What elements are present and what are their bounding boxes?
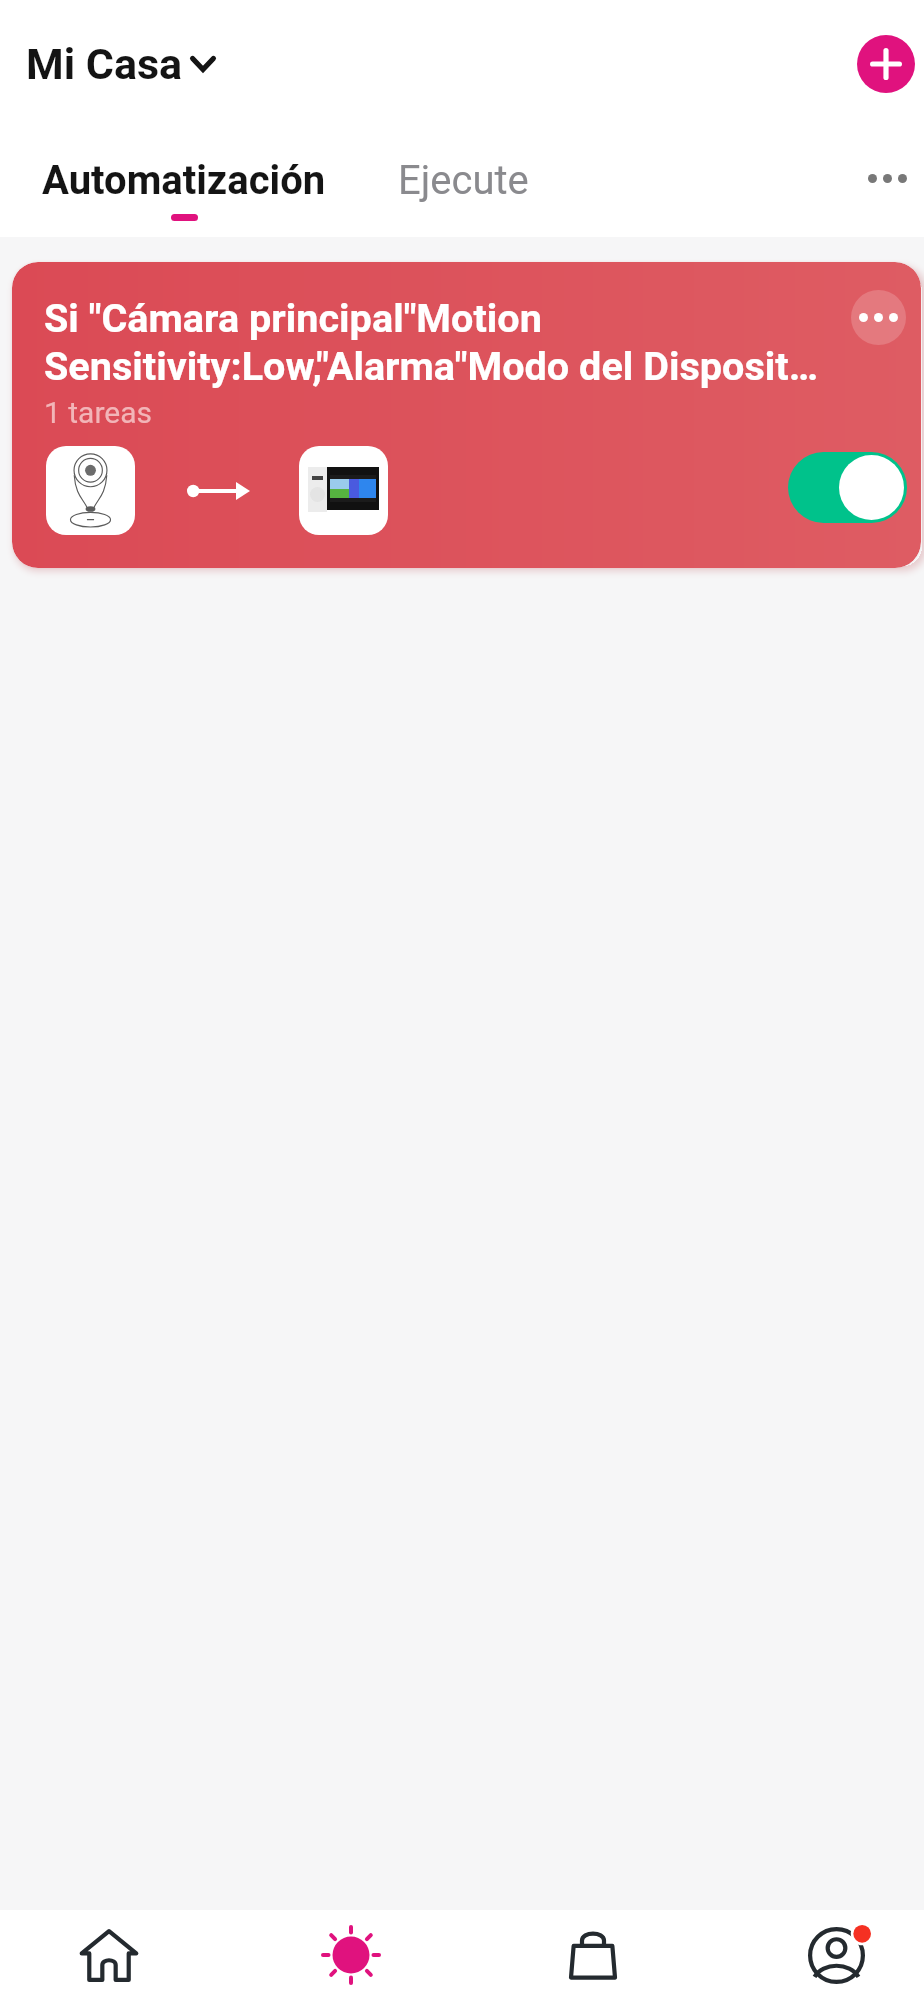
button[interactable] xyxy=(788,452,907,523)
button[interactable]: More options xyxy=(852,143,922,213)
button[interactable]: Card options xyxy=(851,290,906,345)
staticText: 1 tareas xyxy=(44,395,153,430)
button[interactable]: Add xyxy=(857,35,915,93)
button[interactable]: Si "Cámara principal"Motion Sensitivity:… xyxy=(12,262,921,568)
staticText: Ejecute xyxy=(398,157,529,204)
button[interactable]: Smart xyxy=(251,1910,451,2000)
button[interactable]: Automatización xyxy=(24,128,344,225)
button[interactable]: Home xyxy=(9,1910,209,2000)
button[interactable]: Mi Casa xyxy=(26,39,216,89)
staticText: Mi Casa xyxy=(26,39,183,89)
button[interactable]: Profile xyxy=(736,1910,924,2000)
button[interactable]: Shop xyxy=(493,1910,693,2000)
staticText: Automatización xyxy=(42,157,326,204)
staticText: Si "Cámara principal"Motion Sensitivity:… xyxy=(44,295,834,390)
button[interactable]: Ejecute xyxy=(370,128,557,233)
